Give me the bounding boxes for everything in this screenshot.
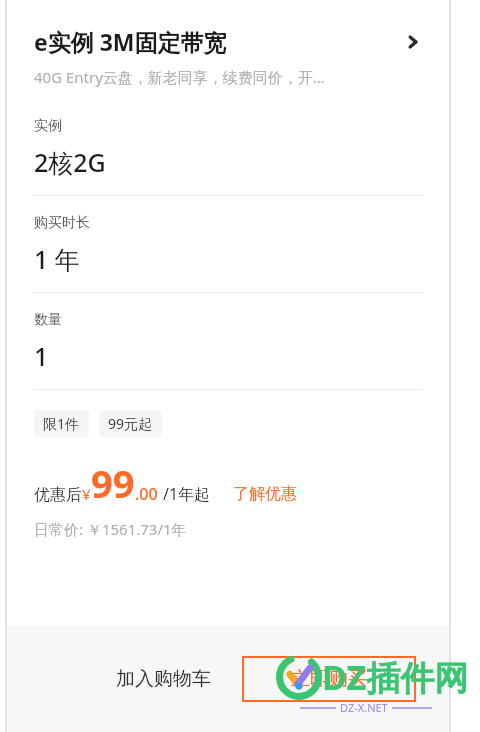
staticText: 1 年: [34, 242, 80, 276]
staticText: 优惠后: [34, 485, 82, 505]
staticText: 40G Entry云盘，新老同享，续费同价，开…: [34, 67, 325, 87]
staticText: 购买时长: [34, 214, 90, 232]
staticText: 数量: [34, 311, 62, 329]
button[interactable]: 立即购买: [243, 657, 415, 701]
other: Details: [404, 33, 422, 51]
staticText: /1年起: [163, 483, 211, 505]
staticText: 加入购物车: [116, 667, 211, 691]
staticText: 了解优惠: [233, 484, 297, 504]
staticText: 限1件: [43, 414, 80, 433]
staticText: DZ插件网: [322, 654, 469, 700]
staticText: ¥: [82, 484, 91, 504]
button[interactable]: 加入购物车: [110, 657, 217, 701]
staticText: 99元起: [108, 414, 153, 433]
button[interactable]: e实例 3M固定带宽: [6, 26, 450, 57]
staticText: 2核2G: [34, 145, 106, 179]
staticText: 日常价: ￥1561.73/1年: [34, 519, 187, 539]
staticText: 1: [34, 339, 49, 373]
staticText: 立即购买: [291, 667, 367, 691]
button[interactable]: 了解优惠: [233, 484, 297, 504]
staticText: DZ-X.NET: [340, 700, 388, 715]
staticText: .00: [135, 483, 158, 505]
staticText: 实例: [34, 117, 62, 135]
staticText: 99: [91, 457, 135, 509]
staticText: e实例 3M固定带宽: [34, 26, 404, 57]
